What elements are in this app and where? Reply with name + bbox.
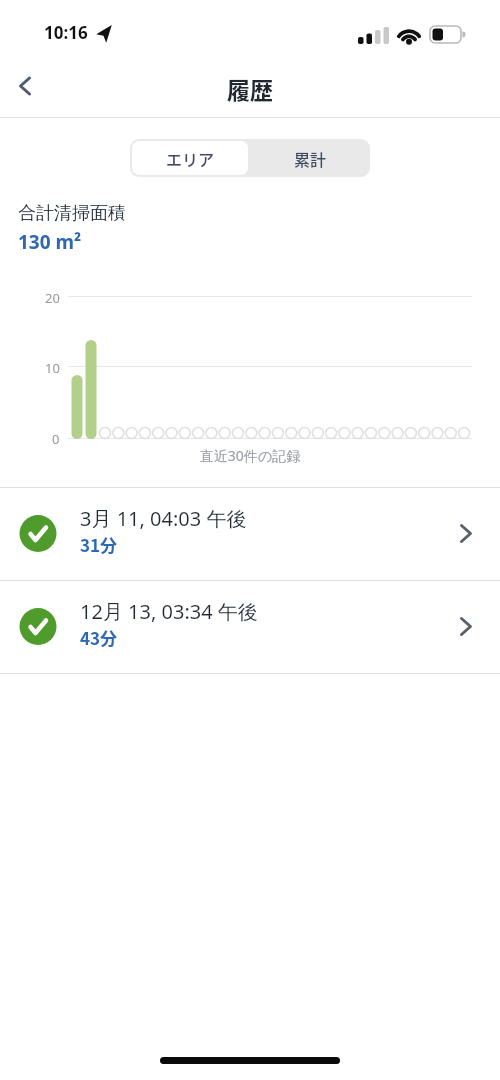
staticText: 43分 bbox=[80, 625, 118, 650]
staticText: 12月 13, 03:34 午後 bbox=[80, 598, 258, 625]
staticText: 直近30件の記録 bbox=[0, 446, 500, 465]
button[interactable]: 3月 11, 04:03 午後 bbox=[0, 488, 500, 580]
button[interactable]: 12月 13, 03:34 午後 bbox=[0, 581, 500, 673]
staticText: 10:16 bbox=[44, 21, 88, 44]
button[interactable] bbox=[6, 64, 50, 108]
staticText: 0 bbox=[52, 430, 60, 448]
staticText: 130 m² bbox=[18, 229, 82, 255]
staticText: 履歴 bbox=[0, 72, 500, 105]
staticText: 10 bbox=[45, 359, 60, 377]
button[interactable]: 累計 bbox=[250, 139, 370, 177]
staticText: 20 bbox=[45, 289, 60, 307]
staticText: 累計 bbox=[294, 147, 327, 170]
button[interactable]: エリア bbox=[130, 139, 250, 177]
staticText: 3月 11, 04:03 午後 bbox=[80, 505, 247, 532]
staticText: 31分 bbox=[80, 532, 118, 557]
staticText: エリア bbox=[166, 147, 215, 170]
staticText: 合計清掃面積 bbox=[18, 202, 126, 225]
